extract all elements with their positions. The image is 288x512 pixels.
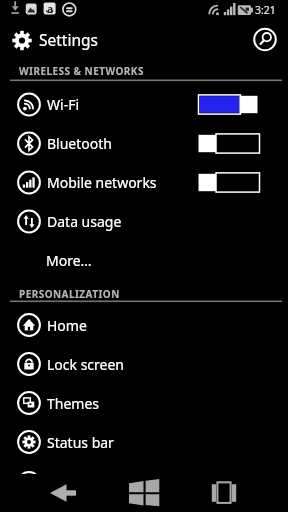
button[interactable] (15, 474, 111, 512)
button[interactable]: Status bar (0, 423, 288, 462)
staticText: 3:21 (255, 3, 276, 17)
staticText: Settings (39, 29, 98, 50)
staticText: Bluetooth (47, 134, 112, 153)
button[interactable]: Data usage (0, 202, 288, 241)
button[interactable]: More… (0, 241, 288, 280)
staticText: PERSONALIZATION (19, 287, 120, 301)
staticText: Status bar (47, 433, 114, 452)
button[interactable] (198, 134, 258, 154)
button[interactable]: Home (0, 306, 288, 345)
button[interactable]: Bluetooth (0, 124, 288, 163)
button[interactable] (198, 95, 258, 115)
button[interactable] (111, 474, 177, 512)
staticText: Lock screen (47, 355, 125, 374)
button[interactable]: Mobile networks (0, 163, 288, 202)
button[interactable]: Wi-Fi (0, 85, 288, 124)
button[interactable]: Themes (0, 384, 288, 423)
staticText: Mobile networks (47, 173, 157, 192)
staticText: Wi-Fi (47, 95, 80, 114)
staticText: Home (47, 316, 87, 335)
button[interactable] (177, 474, 273, 512)
staticText: Data usage (47, 212, 122, 231)
button[interactable] (250, 24, 282, 56)
button[interactable] (198, 173, 258, 193)
staticText: a (47, 2, 54, 16)
staticText: Themes (47, 394, 100, 413)
button[interactable]: Lock screen (0, 345, 288, 384)
staticText: WIRELESS & NETWORKS (19, 64, 144, 78)
staticText: More… (46, 251, 92, 270)
